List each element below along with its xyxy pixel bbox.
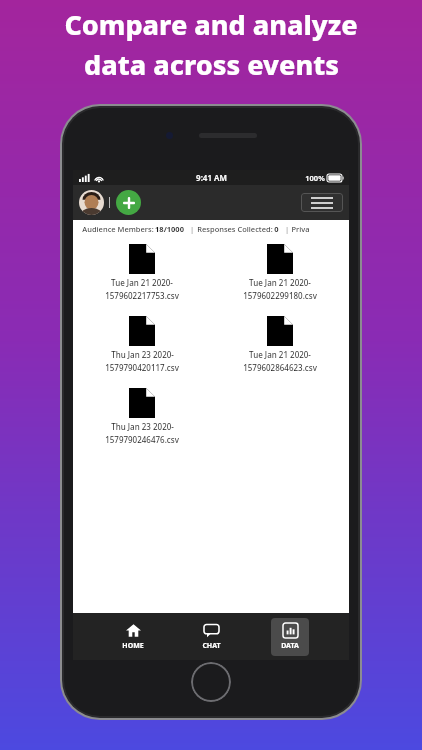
staticText: Thu Jan 23 2020- (111, 421, 174, 432)
staticText: 1579790246476.csv (105, 434, 179, 445)
staticText: Thu Jan 23 2020- (111, 349, 174, 360)
staticText: Compare and analyze (64, 6, 358, 43)
button[interactable]: Tue Jan 21 2020- (211, 242, 349, 303)
staticText: 1579790420117.csv (105, 362, 179, 373)
staticText: Tue Jan 21 2020- (249, 277, 311, 288)
staticText: Tue Jan 21 2020- (111, 277, 173, 288)
staticText: DATA (281, 641, 299, 651)
staticText: | (279, 224, 291, 234)
staticText: Priva (291, 224, 310, 234)
staticText: Tue Jan 21 2020- (249, 349, 311, 360)
staticText: 9:41 AM (196, 172, 227, 183)
staticText: 100% (305, 173, 325, 183)
staticText: HOME (122, 641, 144, 651)
staticText: 1579602864623.csv (243, 362, 317, 373)
button[interactable]: Add (116, 190, 141, 215)
staticText: Audience Members: (81, 224, 155, 234)
button[interactable]: Tue Jan 21 2020- (211, 314, 349, 375)
button[interactable]: CHAT (192, 618, 230, 656)
button[interactable]: DATA (271, 618, 309, 656)
button[interactable]: Profile (79, 190, 104, 215)
button[interactable]: Menu (301, 193, 343, 212)
staticText: 1579602299180.csv (243, 290, 317, 301)
button[interactable]: Thu Jan 23 2020- (73, 314, 211, 375)
staticText: | (184, 224, 196, 234)
button[interactable]: HOME (114, 618, 152, 656)
staticText: CHAT (202, 641, 221, 651)
staticText: Responses Collected: (196, 224, 274, 234)
staticText: 18/1000 (155, 224, 184, 234)
button[interactable]: Tue Jan 21 2020- (73, 242, 211, 303)
button[interactable]: Thu Jan 23 2020- (73, 386, 211, 447)
staticText: data across events (84, 46, 339, 83)
staticText: 1579602217753.csv (105, 290, 179, 301)
staticText: 0 (274, 224, 279, 234)
